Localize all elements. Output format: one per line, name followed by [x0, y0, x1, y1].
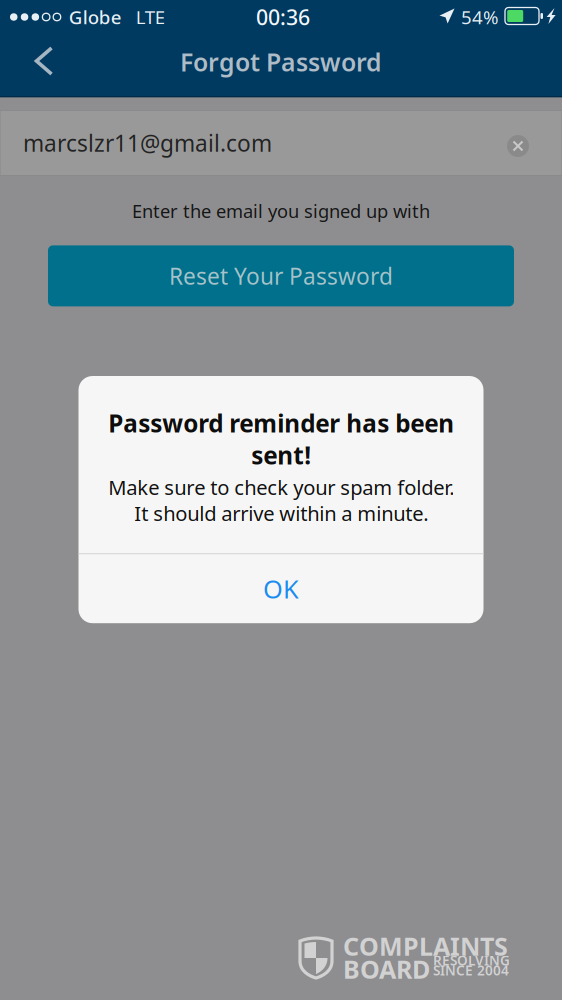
staticText: SINCE 2004	[433, 961, 509, 979]
staticText: Forgot Password	[180, 45, 382, 79]
staticText: BOARD	[343, 952, 430, 986]
staticText: OK	[263, 572, 299, 605]
staticText: 54%	[461, 5, 499, 29]
button[interactable]: Back	[0, 34, 86, 96]
staticText: RESOLVING	[433, 951, 510, 969]
staticText: Password reminder has been sent!	[108, 407, 454, 471]
staticText: COMPLAINTS	[343, 929, 508, 963]
staticText: 00:36	[256, 3, 310, 31]
staticText: Enter the email you signed up with	[132, 198, 430, 223]
button[interactable]: Clear text	[507, 132, 529, 154]
staticText: Globe	[69, 5, 122, 29]
staticText: marcslzr11@gmail.com	[23, 128, 272, 158]
button[interactable]: Reset Your Password	[48, 245, 514, 306]
staticText: LTE	[136, 5, 165, 29]
staticText: Make sure to check your spam folder. It …	[108, 474, 454, 526]
button[interactable]: OK	[78, 554, 483, 623]
staticText: Reset Your Password	[169, 261, 393, 291]
